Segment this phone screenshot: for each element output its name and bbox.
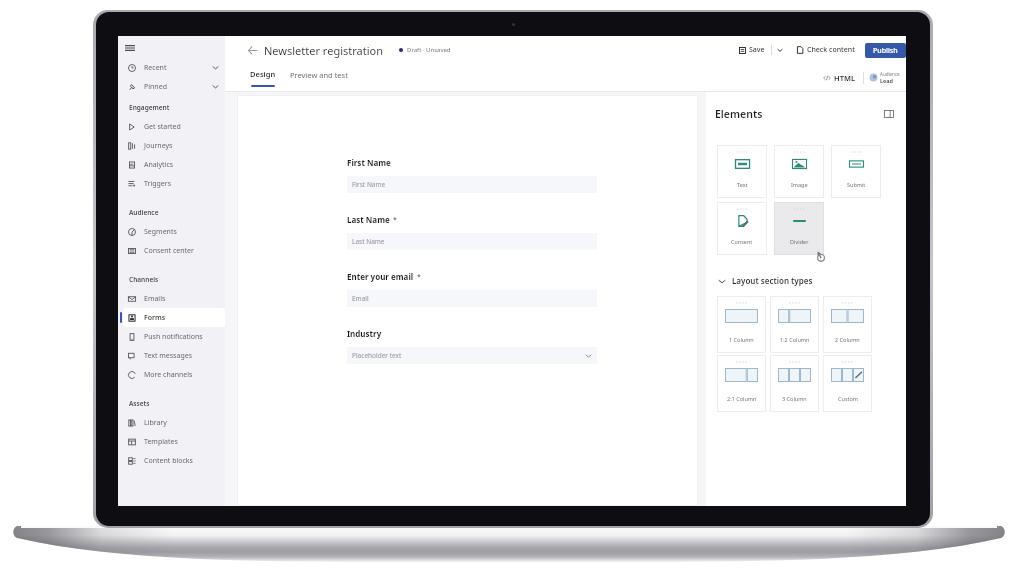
staticText: 1:2 Column [780, 336, 810, 343]
button[interactable]: Design [250, 69, 276, 87]
staticText: Submit [847, 181, 866, 188]
button[interactable]: 1 Column [717, 296, 766, 353]
staticText: Content blocks [144, 456, 193, 466]
staticText: Journeys [144, 141, 173, 151]
button[interactable]: Emails [123, 289, 225, 308]
button[interactable]: HTML [820, 73, 858, 83]
button[interactable]: Triggers [123, 174, 225, 193]
button[interactable]: Audience [869, 71, 900, 84]
button[interactable]: Text [717, 145, 767, 198]
button[interactable]: More channels [123, 365, 225, 384]
button[interactable]: First Name [347, 176, 597, 193]
staticText: Elements [715, 107, 763, 121]
staticText: Templates [144, 437, 178, 447]
staticText: Consent center [144, 246, 194, 256]
staticText: Custom [838, 395, 858, 402]
staticText: Audience [129, 208, 159, 217]
button[interactable]: Library [123, 413, 225, 432]
button[interactable]: Journeys [123, 136, 225, 155]
staticText: Push notifications [144, 332, 203, 342]
staticText: Draft · Unsaved [407, 46, 451, 54]
staticText: First Name [347, 157, 391, 168]
staticText: Design [250, 69, 276, 79]
button[interactable]: Placeholder text [347, 347, 597, 364]
staticText: Get started [144, 122, 181, 132]
staticText: Forms [144, 313, 166, 323]
button[interactable]: Email [347, 290, 597, 307]
button[interactable]: Consent [717, 202, 767, 255]
button[interactable]: Publish [865, 43, 906, 58]
button[interactable]: 2:1 Column [717, 355, 766, 412]
staticText: 3 Column [782, 395, 807, 402]
button[interactable]: Submit [831, 145, 881, 198]
button[interactable]: Push notifications [123, 327, 225, 346]
staticText: 2 Column [835, 336, 860, 343]
staticText: Text messages [144, 351, 192, 361]
staticText: Audience [880, 71, 900, 77]
staticText: Industry [347, 328, 382, 339]
staticText: Image [791, 181, 808, 188]
staticText: Engagement [129, 103, 170, 112]
staticText: Email [352, 294, 369, 303]
button[interactable]: Recent [123, 58, 225, 77]
staticText: Library [144, 418, 167, 428]
staticText: Pinned [144, 82, 167, 92]
button[interactable]: Custom [823, 355, 872, 412]
staticText: HTML [834, 73, 855, 83]
button[interactable]: Save options [775, 45, 785, 55]
staticText: Layout section types [732, 275, 813, 286]
button[interactable]: Back [245, 43, 259, 57]
staticText: Recent [144, 63, 167, 73]
button[interactable]: 2 Column [823, 296, 872, 353]
staticText: Preview and test [290, 70, 348, 80]
button[interactable]: 3 Column [770, 355, 819, 412]
button[interactable]: Collapse panel [882, 107, 896, 121]
staticText: Channels [129, 275, 159, 284]
staticText: Save [749, 45, 765, 55]
staticText: * [417, 272, 421, 282]
button[interactable]: Consent center [123, 241, 225, 260]
button[interactable]: Content blocks [123, 451, 225, 470]
button[interactable]: Preview and test [290, 70, 348, 86]
staticText: Divider [790, 238, 809, 245]
staticText: Analytics [144, 160, 174, 170]
button[interactable]: Templates [123, 432, 225, 451]
staticText: Publish [873, 46, 898, 56]
staticText: Lead [880, 77, 893, 84]
staticText: Text [737, 181, 748, 188]
button[interactable]: Get started [123, 117, 225, 136]
staticText: 2:1 Column [727, 395, 757, 402]
staticText: Newsletter registration [264, 43, 383, 58]
button[interactable]: 1:2 Column [770, 296, 819, 353]
staticText: Emails [144, 294, 166, 304]
button[interactable]: Last Name [347, 233, 597, 250]
button[interactable]: Divider [774, 202, 824, 255]
button[interactable]: Check content [793, 42, 858, 58]
staticText: 1 Column [729, 336, 754, 343]
staticText: Consent [731, 238, 753, 245]
button[interactable]: Analytics [123, 155, 225, 174]
staticText: More channels [144, 370, 193, 380]
staticText: Assets [129, 399, 150, 408]
staticText: First Name [352, 180, 386, 189]
staticText: Placeholder text [352, 351, 402, 360]
staticText: Triggers [144, 179, 172, 189]
button[interactable]: Save [736, 42, 768, 58]
staticText: Enter your email [347, 271, 414, 282]
staticText: Last Name [347, 214, 390, 225]
button[interactable]: Layout section types [718, 275, 813, 286]
staticText: * [393, 215, 397, 225]
button[interactable]: Text messages [123, 346, 225, 365]
staticText: Segments [144, 227, 177, 237]
staticText: Last Name [352, 237, 385, 246]
button[interactable]: Image [774, 145, 824, 198]
button[interactable]: Menu [118, 40, 142, 55]
button[interactable]: Segments [123, 222, 225, 241]
button[interactable]: Forms [123, 308, 225, 327]
button[interactable]: Pinned [123, 77, 225, 96]
staticText: Check content [807, 45, 855, 55]
